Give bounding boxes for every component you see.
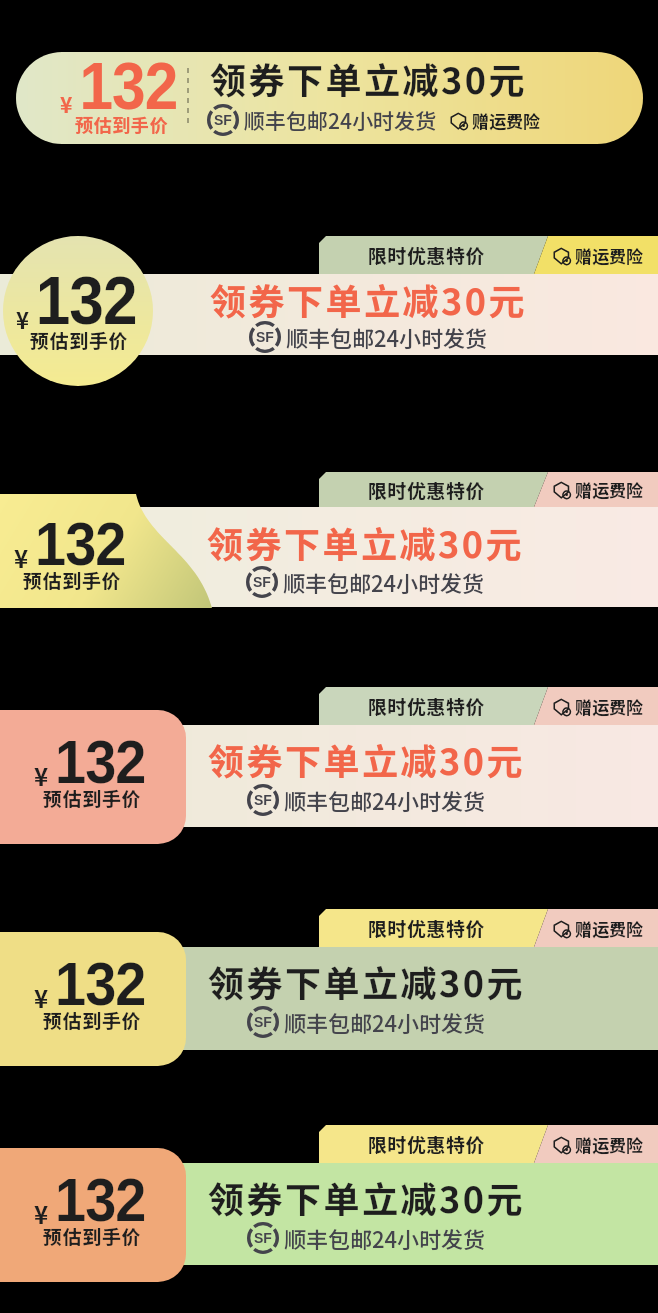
staticText: 赠运费险 [575, 477, 643, 502]
staticText: 132 [35, 509, 126, 578]
staticText: 132 [55, 949, 146, 1018]
staticText: ¥ [34, 980, 49, 1015]
button[interactable] [0, 725, 658, 827]
staticText: 预估到手价 [43, 1006, 142, 1034]
button[interactable] [0, 274, 658, 355]
staticText: 领券下单立减30元 [207, 516, 524, 568]
button[interactable]: ¥ [16, 52, 643, 144]
staticText: 限时优惠特价 [368, 1130, 486, 1158]
button[interactable]: 限时优惠特价 [319, 472, 534, 507]
staticText: 领券下单立减30元 [208, 955, 525, 1007]
button[interactable] [0, 947, 658, 1050]
staticText: SF [254, 1014, 272, 1030]
button[interactable] [0, 1163, 658, 1265]
staticText: 顺丰包邮24小时发货 [284, 1222, 486, 1254]
button[interactable]: 赠运费险 [553, 477, 643, 502]
staticText: 132 [36, 262, 137, 339]
button[interactable]: 限时优惠特价 [319, 236, 534, 274]
staticText: 132 [79, 52, 177, 123]
button[interactable] [0, 932, 186, 1066]
staticText: 限时优惠特价 [368, 241, 486, 269]
button[interactable] [0, 507, 658, 607]
button[interactable]: 赠运费险 [553, 916, 643, 941]
staticText: 赠运费险 [575, 243, 643, 268]
button[interactable]: 赠运费险 [553, 243, 643, 268]
staticText: 预估到手价 [30, 326, 129, 354]
staticText: ¥ [14, 540, 29, 575]
staticText: 顺丰包邮24小时发货 [286, 321, 488, 353]
button[interactable]: 赠运费险 [450, 108, 540, 133]
staticText: 领券下单立减30元 [208, 733, 525, 785]
button[interactable] [3, 236, 153, 386]
staticText: SF [253, 574, 271, 590]
staticText: ¥ [34, 1196, 49, 1231]
staticText: 赠运费险 [472, 108, 540, 133]
staticText: 顺丰包邮24小时发货 [244, 105, 436, 135]
staticText: 预估到手价 [75, 111, 168, 137]
staticText: 顺丰包邮24小时发货 [284, 784, 486, 816]
staticText: 预估到手价 [23, 566, 122, 594]
staticText: 预估到手价 [43, 784, 142, 812]
staticText: 限时优惠特价 [368, 692, 486, 720]
staticText: SF [214, 112, 232, 128]
staticText: ¥ [60, 89, 73, 119]
button[interactable] [0, 1148, 186, 1282]
staticText: 132 [55, 1165, 146, 1234]
staticText: ¥ [34, 758, 49, 793]
staticText: SF [254, 1230, 272, 1246]
staticText: 赠运费险 [575, 1132, 643, 1157]
button[interactable] [0, 710, 186, 844]
button[interactable]: 赠运费险 [553, 1132, 643, 1157]
button[interactable]: 限时优惠特价 [319, 1125, 534, 1163]
staticText: 赠运费险 [575, 916, 643, 941]
staticText: 赠运费险 [575, 694, 643, 719]
button[interactable]: 限时优惠特价 [319, 909, 534, 947]
staticText: 顺丰包邮24小时发货 [283, 566, 485, 598]
staticText: 顺丰包邮24小时发货 [284, 1006, 486, 1038]
button[interactable]: 赠运费险 [553, 694, 643, 719]
staticText: 预估到手价 [43, 1222, 142, 1250]
button[interactable]: 限时优惠特价 [319, 687, 534, 725]
staticText: SF [254, 792, 272, 808]
staticText: 限时优惠特价 [368, 914, 486, 942]
staticText: 132 [55, 727, 146, 796]
staticText: 领券下单立减30元 [210, 273, 527, 325]
staticText: ¥ [16, 303, 29, 335]
staticText: 领券下单立减30元 [208, 1171, 525, 1223]
staticText: 限时优惠特价 [368, 476, 486, 504]
staticText: 领券下单立减30元 [210, 52, 527, 104]
staticText: SF [256, 329, 274, 345]
